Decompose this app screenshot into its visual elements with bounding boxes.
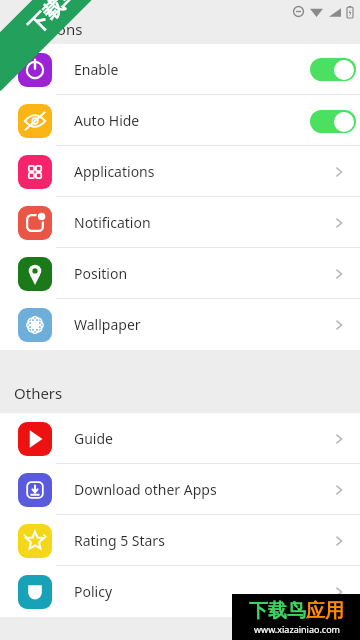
staticText: Functions	[14, 19, 83, 39]
button[interactable]: Notification	[0, 197, 360, 248]
staticText: 下载鸟	[249, 599, 306, 623]
staticText: 应用	[306, 599, 344, 623]
staticText: Guide	[74, 429, 113, 448]
staticText: www.xiazainiao.com	[254, 623, 340, 635]
button[interactable]: Policy	[0, 566, 360, 617]
staticText: Download other Apps	[74, 480, 217, 499]
staticText: 下载鸟	[23, 0, 83, 39]
staticText: Notification	[74, 213, 151, 232]
button[interactable]: Toggle on	[310, 58, 356, 81]
staticText: Applications	[74, 162, 155, 181]
staticText: Rating 5 Stars	[74, 531, 165, 550]
button[interactable]: Rating 5 Stars	[0, 515, 360, 566]
button[interactable]: Auto Hide	[0, 95, 360, 146]
button[interactable]: Applications	[0, 146, 360, 197]
staticText: Policy	[74, 582, 113, 601]
button[interactable]: Position	[0, 248, 360, 299]
staticText: Auto Hide	[74, 111, 140, 130]
button[interactable]: Toggle on	[310, 110, 356, 133]
staticText: Position	[74, 264, 128, 283]
staticText: Enable	[74, 60, 119, 79]
button[interactable]: Enable	[0, 44, 360, 95]
button[interactable]: Guide	[0, 413, 360, 464]
staticText: Wallpaper	[74, 315, 141, 334]
button[interactable]: Download other Apps	[0, 464, 360, 515]
staticText: Others	[14, 383, 63, 403]
button[interactable]: Wallpaper	[0, 299, 360, 350]
